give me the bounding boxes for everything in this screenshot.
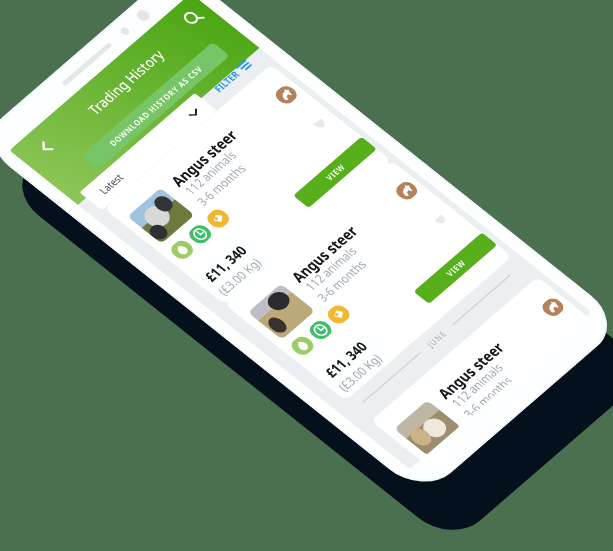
staticText: (£3.00 Kg) — [334, 351, 386, 395]
button[interactable]: Search — [178, 5, 209, 30]
staticText: 112 animals — [301, 243, 361, 294]
button[interactable]: Cattle — [539, 295, 567, 319]
staticText: 3-6 months — [313, 256, 371, 305]
staticText: £11, 340 — [200, 242, 251, 285]
button[interactable]: DOWNLOAD HISTORY AS CSV — [81, 42, 230, 169]
staticText: JUNE — [424, 328, 449, 349]
staticText: 3-6 months — [459, 373, 513, 418]
staticText: 112 animals — [447, 360, 507, 411]
staticText: VIEW — [443, 258, 468, 278]
staticText: (£3.00 Kg) — [214, 255, 266, 299]
button[interactable]: Angus steer — [224, 160, 512, 401]
staticText: Latest — [96, 171, 126, 197]
staticText: Trading History — [83, 46, 169, 119]
button[interactable]: Latest — [79, 93, 217, 210]
button[interactable]: VIEW — [293, 136, 377, 208]
staticText: VIEW — [323, 162, 348, 182]
staticText: Angus steer — [166, 125, 242, 190]
button[interactable]: VIEW — [413, 232, 498, 304]
button[interactable]: Back — [31, 135, 61, 160]
button[interactable]: Cattle — [392, 179, 421, 203]
button[interactable]: FILTER — [211, 58, 254, 95]
staticText: 112 animals — [181, 147, 241, 198]
staticText: Angus steer — [432, 338, 509, 402]
staticText: 3-6 months — [193, 160, 250, 209]
button[interactable]: Angus steer — [371, 277, 587, 460]
staticText: £11, 340 — [320, 338, 372, 381]
staticText: DOWNLOAD HISTORY AS CSV — [106, 63, 205, 148]
button[interactable]: Angus steer — [104, 64, 392, 305]
button[interactable]: Cattle — [272, 83, 300, 107]
staticText: FILTER — [211, 68, 242, 95]
staticText: Angus steer — [286, 221, 362, 286]
